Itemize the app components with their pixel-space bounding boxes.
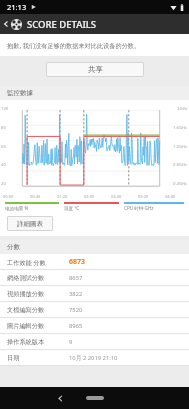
staticText: 1.6GHz (173, 125, 188, 131)
staticText: 1.2GHz (173, 144, 188, 150)
staticText: 02:40 (111, 194, 122, 199)
staticText: 8965 (69, 322, 83, 330)
staticText: 10月 2 2019 21:10 (69, 354, 118, 362)
staticText: 电池电量 % (5, 205, 64, 211)
button[interactable]: 詳細圖表 (7, 216, 53, 231)
staticText: 視頻播放分數 (7, 290, 69, 298)
staticText: 抱歉, 我们没有足够的数据来对比此设备的分数。 (7, 41, 141, 49)
button[interactable]: 文檔編寫分數 (0, 302, 189, 318)
staticText: 分數 (7, 243, 20, 251)
button[interactable]: 工作效能 分數 (0, 254, 189, 270)
staticText: 00:40 (30, 194, 41, 199)
staticText: 詳細圖表 (17, 220, 43, 228)
staticText: 網絡測試分數 (7, 274, 69, 282)
button[interactable]: 日期 (0, 350, 189, 366)
staticText: 圖片編輯分數 (7, 322, 69, 330)
staticText: 8657 (69, 274, 83, 282)
staticText: 0.4GHz (173, 181, 188, 187)
button[interactable]: 網絡測試分數 (0, 270, 189, 286)
button[interactable]: Back (0, 14, 11, 34)
staticText: 60 (1, 144, 6, 150)
staticText: 2GHz (177, 106, 188, 112)
staticText: 文檔編寫分數 (7, 306, 69, 314)
staticText: 120 (1, 106, 9, 112)
staticText: 7520 (69, 306, 83, 314)
button[interactable]: 共享 (46, 62, 144, 77)
button[interactable]: 視頻播放分數 (0, 286, 189, 302)
button[interactable]: Home (86, 396, 104, 400)
staticText: 21:13 (7, 2, 27, 12)
staticText: 40 (1, 162, 6, 168)
button[interactable]: Back (53, 391, 67, 405)
staticText: 0.8GHz (173, 162, 188, 168)
button[interactable]: 操作系統版本 (0, 334, 189, 350)
staticText: 操作系統版本 (7, 338, 69, 346)
staticText: 03:20 (138, 194, 149, 199)
staticText: 温度 °C (64, 205, 124, 211)
staticText: 02:00 (84, 194, 95, 199)
staticText: 6873 (69, 257, 86, 267)
staticText: 20 (1, 181, 6, 187)
staticText: 04:00 (165, 194, 176, 199)
staticText: 監控數據 (7, 89, 33, 97)
staticText: SCORE DETAILS (27, 18, 97, 31)
staticText: 80 (1, 125, 6, 131)
staticText: 日期 (7, 354, 69, 362)
button[interactable]: 圖片編輯分數 (0, 318, 189, 334)
staticText: 共享 (88, 65, 103, 74)
staticText: 01:20 (57, 194, 68, 199)
staticText: CPU 时钟 GHz (124, 205, 184, 211)
staticText: 00:00 (3, 194, 14, 199)
staticText: 工作效能 分數 (7, 258, 69, 266)
staticText: 3822 (69, 290, 83, 298)
staticText: 9 (69, 338, 73, 346)
